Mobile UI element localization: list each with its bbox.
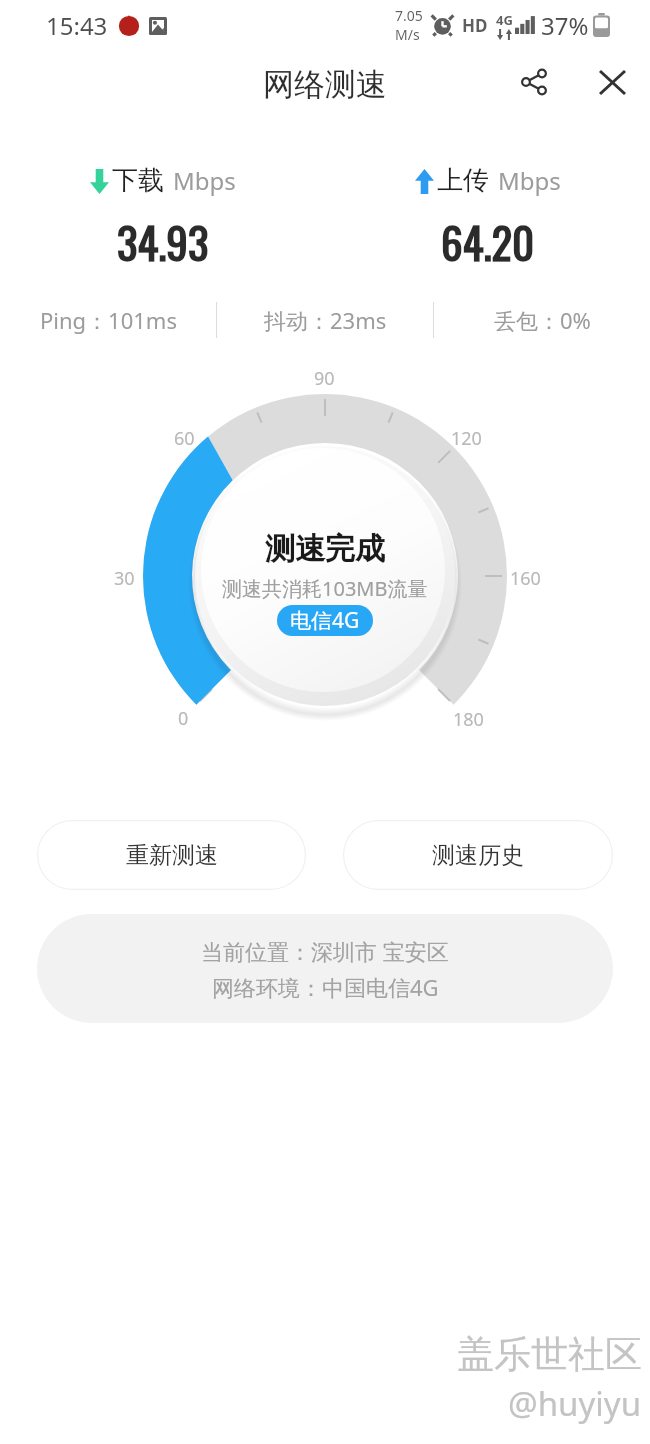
staticText: HD bbox=[462, 14, 488, 37]
staticText: 34.93 bbox=[117, 210, 209, 274]
staticText: 当前位置：深圳市 宝安区 bbox=[201, 936, 449, 966]
staticText: 37% bbox=[541, 9, 589, 42]
staticText: 测速共消耗103MB流量 bbox=[222, 575, 428, 602]
staticText: Mbps bbox=[173, 164, 236, 197]
staticText: @huyiyu bbox=[508, 1381, 642, 1426]
staticText: 上传 bbox=[437, 164, 489, 197]
staticText: 7.05 bbox=[395, 6, 423, 25]
staticText: 重新测速 bbox=[126, 841, 218, 870]
staticText: 盖乐世社区 bbox=[457, 1331, 642, 1378]
staticText: 30 bbox=[114, 566, 135, 591]
staticText: 测速完成 bbox=[265, 530, 385, 566]
button[interactable]: Close bbox=[582, 52, 642, 112]
staticText: 15:43 bbox=[46, 9, 108, 42]
staticText: 测速历史 bbox=[432, 841, 524, 870]
staticText: 60 bbox=[174, 426, 195, 451]
staticText: 180 bbox=[453, 707, 484, 732]
staticText: M/s bbox=[395, 25, 420, 44]
staticText: 4G bbox=[496, 11, 513, 29]
staticText: 网络环境：中国电信4G bbox=[212, 972, 439, 1002]
staticText: 下载 bbox=[112, 164, 164, 197]
staticText: 90 bbox=[314, 366, 335, 391]
staticText: Mbps bbox=[498, 164, 561, 197]
staticText: 丢包：0% bbox=[494, 305, 591, 335]
staticText: 网络测速 bbox=[263, 65, 387, 104]
staticText: 抖动：23ms bbox=[264, 305, 387, 335]
staticText: 0 bbox=[178, 706, 189, 731]
button[interactable]: 测速历史 bbox=[343, 820, 613, 890]
staticText: 160 bbox=[510, 566, 541, 591]
button[interactable]: Share bbox=[504, 52, 564, 112]
staticText: 120 bbox=[451, 426, 482, 451]
button[interactable]: 重新测速 bbox=[37, 820, 306, 890]
staticText: 64.20 bbox=[441, 210, 535, 274]
staticText: 电信4G bbox=[290, 606, 360, 635]
staticText: Ping：101ms bbox=[40, 305, 177, 335]
